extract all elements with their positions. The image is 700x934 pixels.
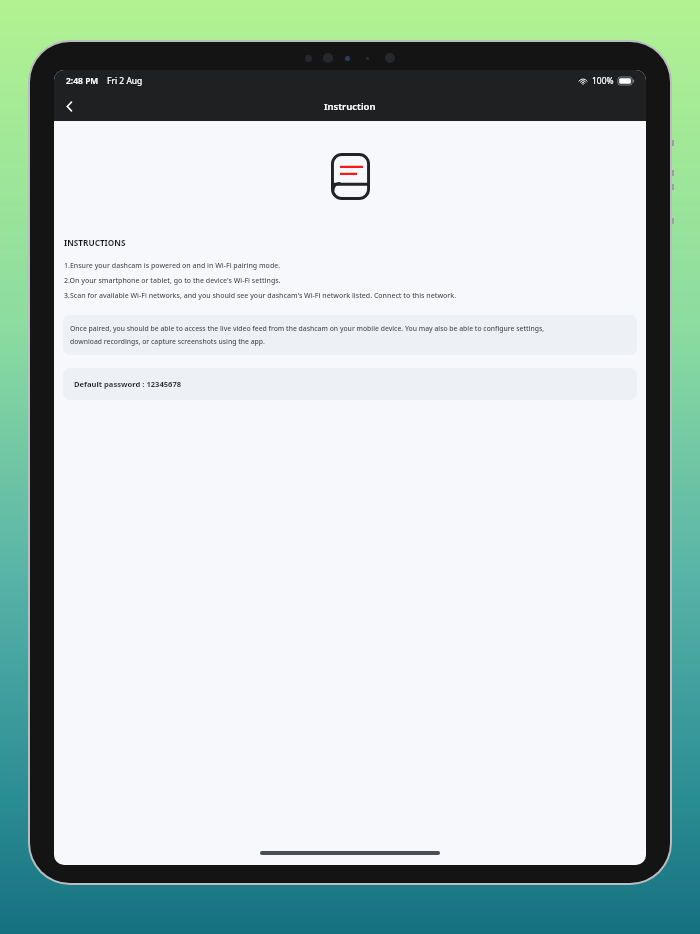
staticText: Instruction (324, 100, 376, 113)
staticText: Once paired, you should be able to acces… (70, 324, 545, 333)
staticText: Default password : 12345678 (74, 379, 182, 389)
staticText: INSTRUCTIONS (64, 237, 126, 248)
button[interactable]: Default password : 12345678 (63, 368, 637, 400)
staticText: 2:48 PM (66, 75, 99, 87)
button[interactable]: Back (54, 91, 84, 121)
staticText: 1.Ensure your dashcam is powered on and … (64, 261, 281, 271)
staticText: download recordings, or capture screensh… (70, 337, 265, 346)
staticText: 100% (592, 75, 614, 87)
staticText: 3.Scan for available Wi-Fi networks, and… (64, 291, 457, 301)
staticText: Fri 2 Aug (107, 75, 143, 87)
staticText: 2.On your smartphone or tablet, go to th… (64, 276, 281, 286)
